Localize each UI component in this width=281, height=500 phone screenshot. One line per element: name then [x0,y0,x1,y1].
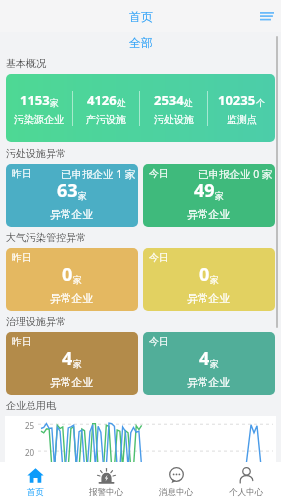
staticText: 已申报企业 0 家 [198,167,273,181]
staticText: 报警中心 [89,487,124,498]
staticText: 监测点 [227,113,257,126]
button[interactable]: Menu [254,3,280,29]
staticText: 企业总用电 [6,399,56,412]
staticText: 昨日 [12,251,32,264]
staticText: 个 [256,97,265,108]
staticText: 家 [73,274,82,285]
staticText: 产污设施 [86,113,126,126]
button[interactable]: 个人中心 [211,462,281,500]
staticText: 家 [215,190,224,201]
staticText: 家 [210,274,219,285]
button[interactable]: 昨日 [6,332,138,395]
staticText: 49 [194,178,215,203]
button[interactable]: 昨日 [6,248,138,311]
staticText: 异常企业 [187,208,231,222]
staticText: 异常企业 [187,376,231,390]
staticText: 异常企业 [50,292,94,306]
staticText: 今日 [149,167,169,180]
staticText: 处 [117,97,126,108]
staticText: 0 [62,262,73,287]
staticText: 消息中心 [159,487,194,498]
staticText: 污处设施异常 [6,147,66,160]
staticText: 昨日 [12,167,32,180]
staticText: 0 [199,262,210,287]
staticText: 处 [184,97,193,108]
staticText: 全部 [129,35,153,50]
staticText: 家 [73,358,82,369]
staticText: 昨日 [12,335,32,348]
staticText: 4 [199,346,210,371]
staticText: 家 [78,190,87,201]
staticText: 已申报企业 1 家 [61,167,136,181]
staticText: 4 [62,346,73,371]
staticText: 今日 [149,251,169,264]
staticText: 家 [50,97,59,108]
staticText: 个人中心 [229,487,264,498]
staticText: 2534 [154,91,184,109]
staticText: 污处设施 [154,113,194,126]
staticText: 1153 [20,91,50,109]
staticText: 25 [25,420,35,431]
button[interactable]: 今日 [143,164,275,227]
button[interactable]: 今日 [143,332,275,395]
button[interactable]: 消息中心 [141,462,211,500]
staticText: 63 [57,178,78,203]
staticText: 大气污染管控异常 [6,231,86,244]
staticText: 首页 [129,9,153,24]
staticText: 家 [210,358,219,369]
button[interactable]: 首页 [0,462,71,500]
button[interactable]: 昨日 [6,164,138,227]
button[interactable]: 今日 [143,248,275,311]
staticText: 基本概况 [6,57,46,70]
staticText: 今日 [149,335,169,348]
staticText: 10235 [218,91,256,109]
button[interactable]: 1153 [6,74,275,142]
staticText: 首页 [27,487,45,498]
staticText: 异常企业 [50,376,94,390]
staticText: 污染源企业 [14,113,64,126]
staticText: 异常企业 [187,292,231,306]
staticText: 治理设施异常 [6,315,66,328]
staticText: 20 [25,447,35,458]
button[interactable]: 报警中心 [71,462,141,500]
staticText: 异常企业 [50,208,94,222]
staticText: 4126 [87,91,117,109]
